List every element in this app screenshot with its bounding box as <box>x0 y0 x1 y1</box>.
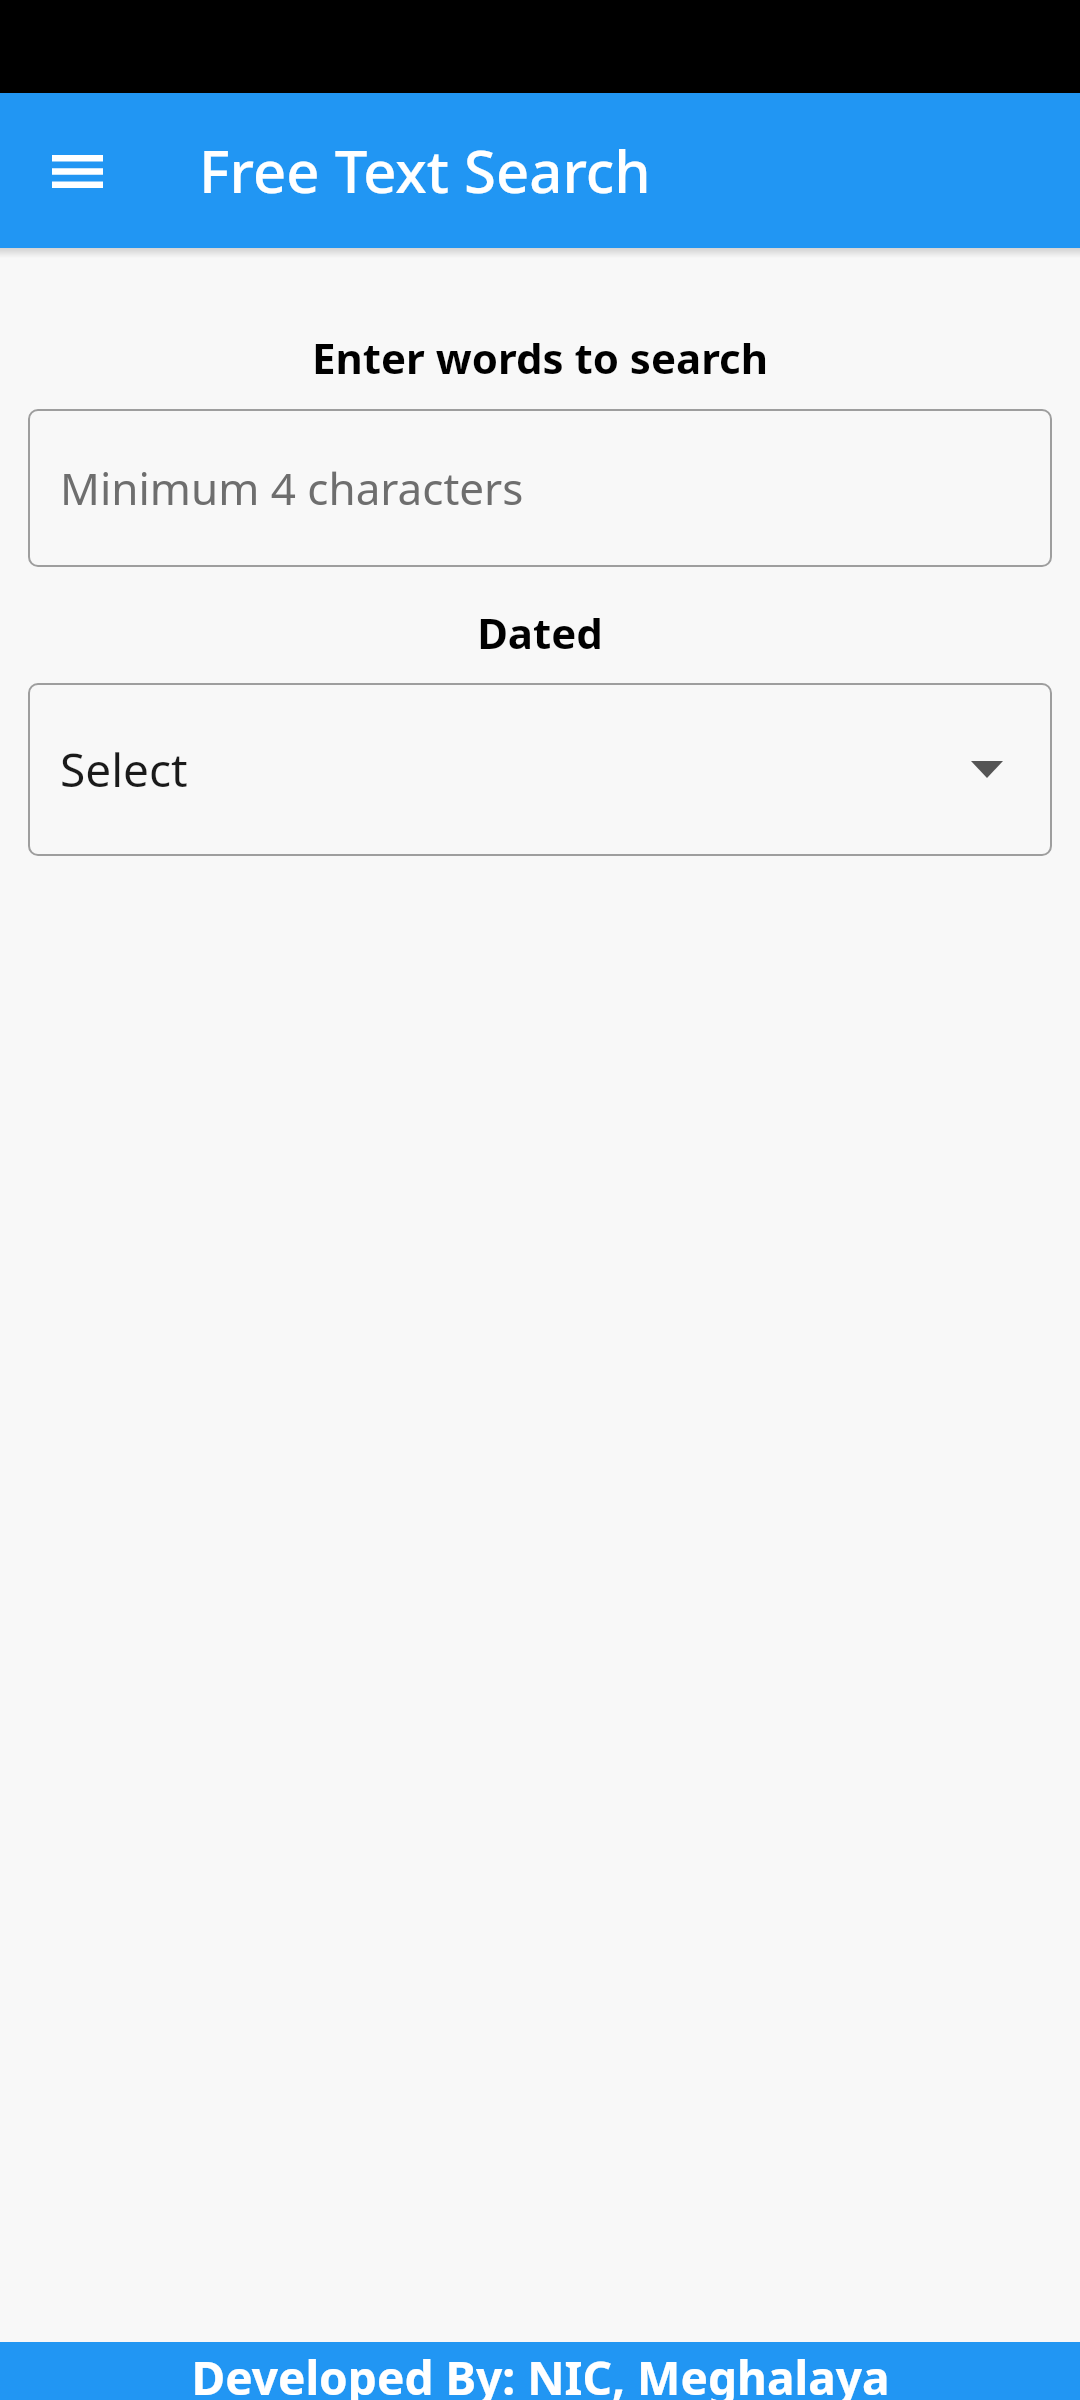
button[interactable]: Dated, Select <box>28 683 1052 856</box>
staticText: Minimum 4 characters <box>60 458 524 518</box>
staticText: Dated <box>0 604 1080 661</box>
staticText: Select <box>60 738 188 801</box>
staticText: Enter words to search <box>0 329 1080 386</box>
staticText: Free Text Search <box>199 131 651 210</box>
button[interactable]: Developed By: NIC, Meghalaya <box>0 2342 1080 2400</box>
button[interactable]: Minimum 4 characters <box>28 409 1052 567</box>
staticText: Developed By: NIC, Meghalaya <box>191 2346 890 2400</box>
button[interactable]: Open navigation menu <box>18 112 136 230</box>
